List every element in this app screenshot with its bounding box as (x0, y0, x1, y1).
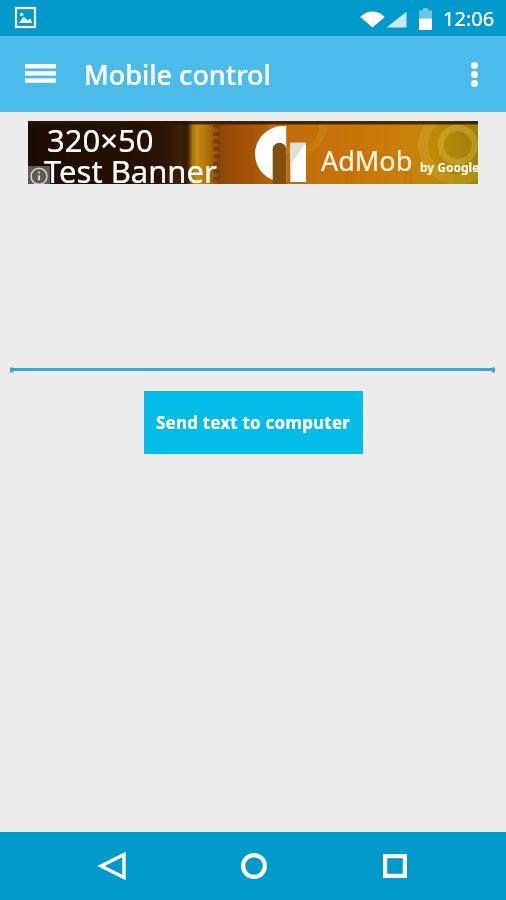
staticText: AdMob (321, 142, 413, 179)
button[interactable]: More options (446, 46, 502, 102)
staticText: 320×50 (47, 121, 154, 161)
staticText: Mobile control (84, 56, 271, 93)
staticText: Send text to computer (156, 411, 351, 434)
button[interactable]: Recent apps (353, 832, 436, 900)
button[interactable]: Back (71, 832, 154, 900)
staticText: 12:06 (443, 5, 495, 32)
button[interactable]: Advertisement (28, 121, 478, 184)
button[interactable]: Home (212, 832, 295, 900)
staticText: Test Banner (44, 150, 217, 184)
button[interactable]: Open navigation drawer (8, 42, 72, 106)
button[interactable]: Send text to computer (144, 391, 363, 454)
staticText: by Google (420, 159, 478, 175)
